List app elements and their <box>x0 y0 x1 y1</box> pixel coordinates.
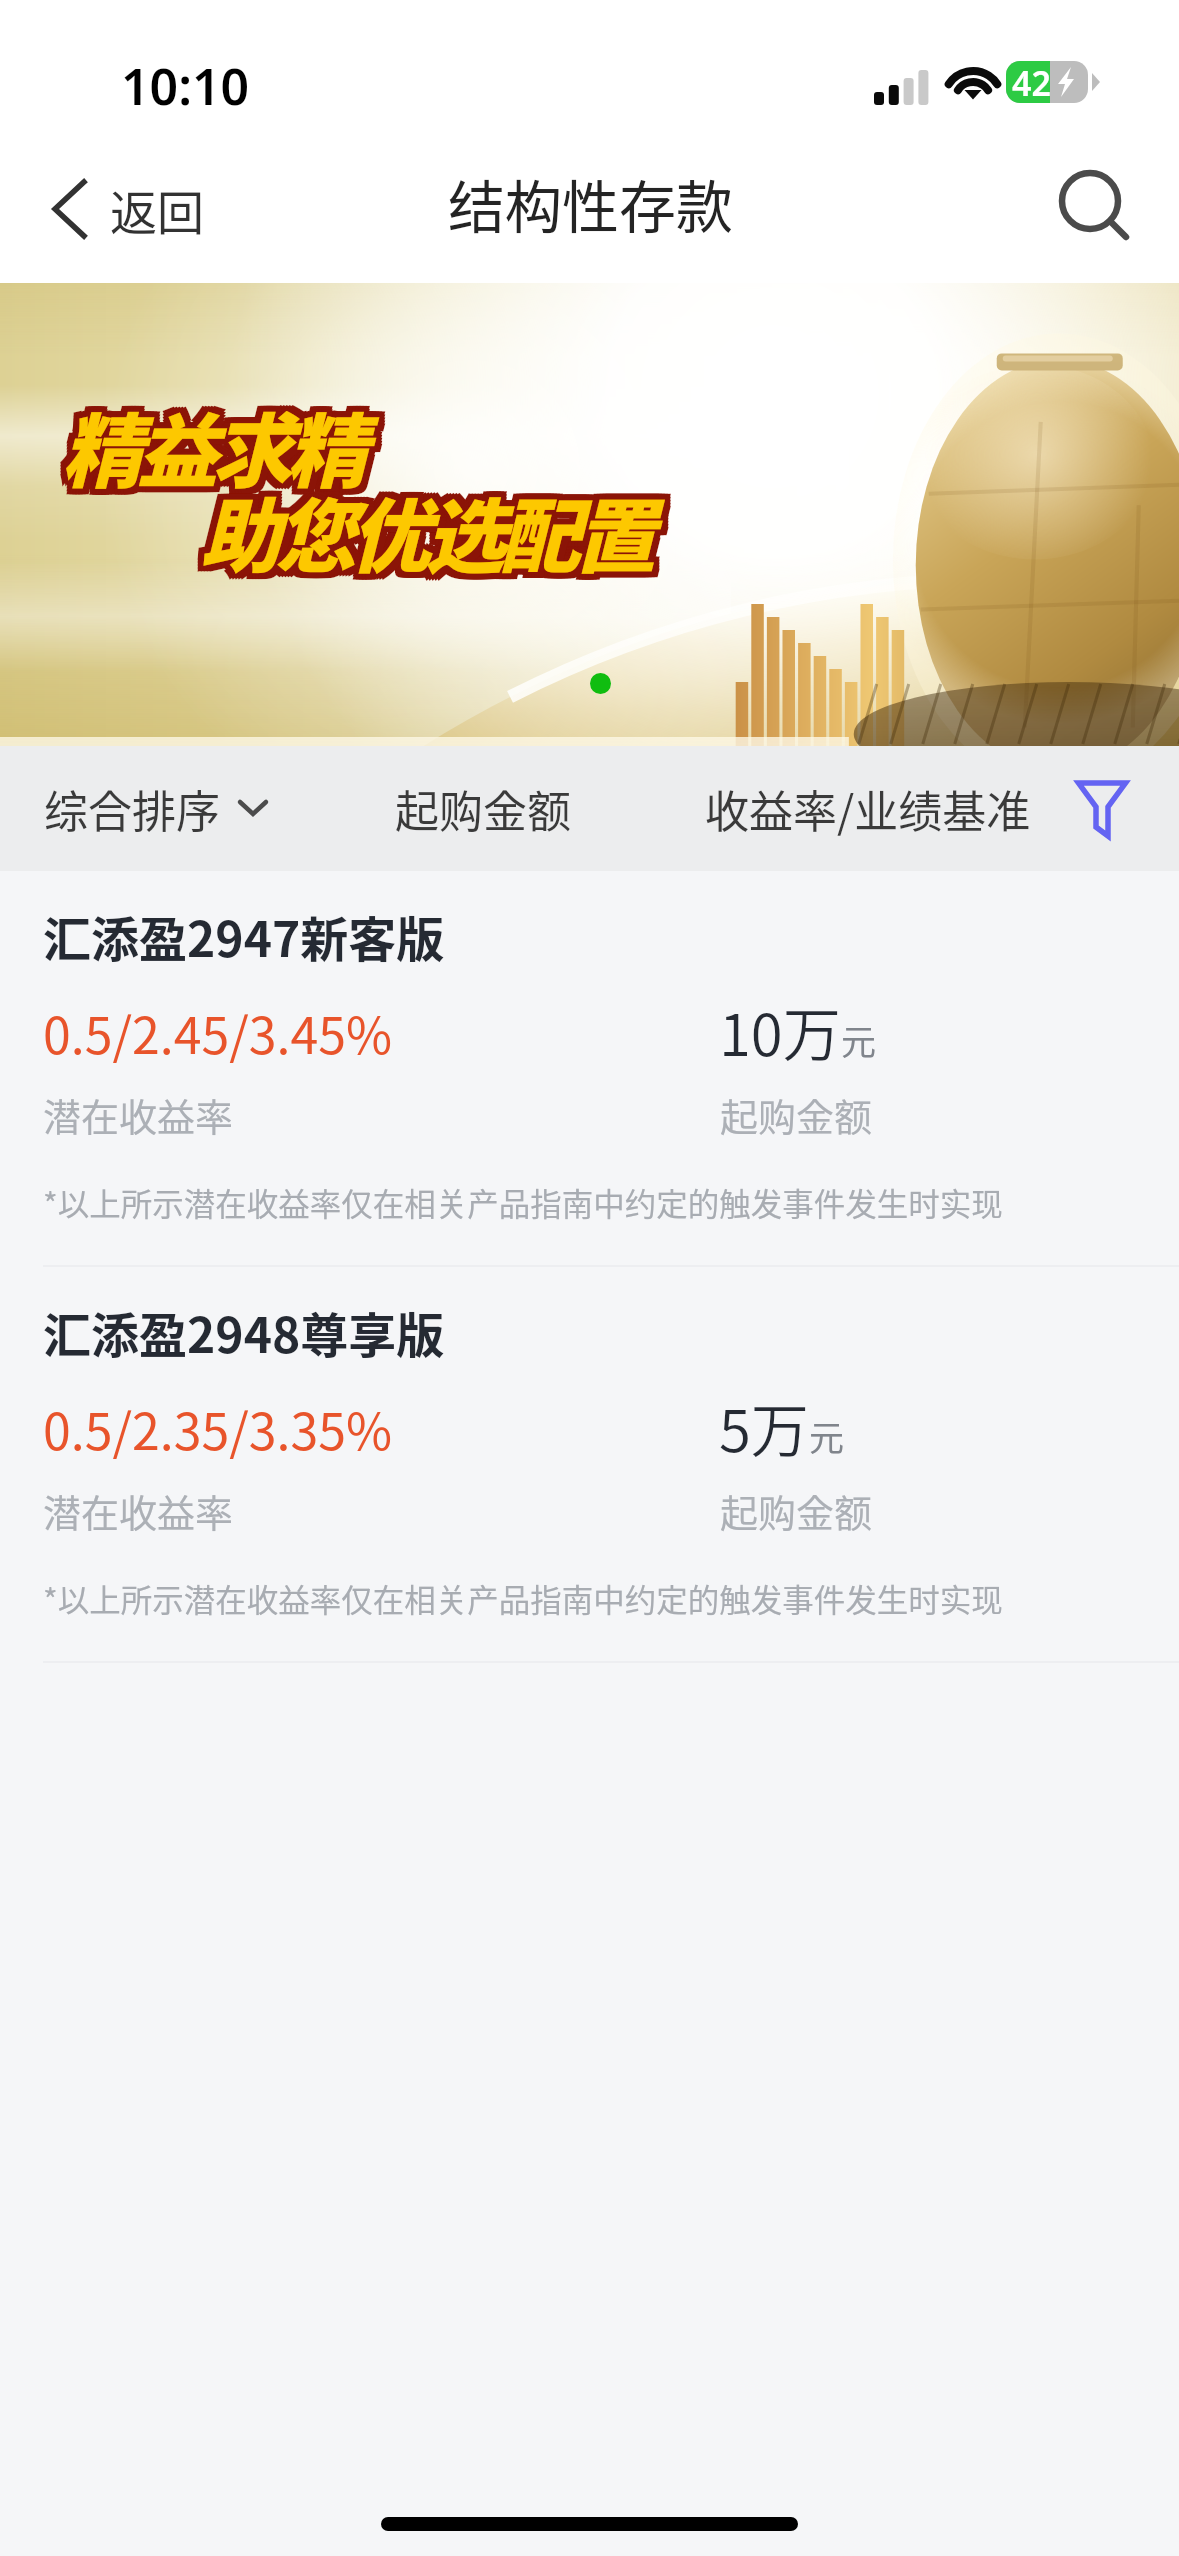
staticText: 助您优选配置 <box>206 478 657 595</box>
button[interactable]: 汇添盈2947新客版 <box>0 871 1179 1267</box>
staticText: 助您优选配置 <box>197 475 648 592</box>
staticText: 助您优选配置 <box>200 472 651 589</box>
staticText: 助您优选配置 <box>203 472 654 589</box>
staticText: 潜在收益率 <box>43 1087 234 1142</box>
staticText: 0.5/2.35/3.35% <box>43 1392 392 1464</box>
button[interactable]: 返回 <box>0 159 232 259</box>
staticText: 助您优选配置 <box>200 466 651 583</box>
staticText: 助您优选配置 <box>200 478 651 595</box>
staticText: 汇添盈2948尊享版 <box>43 1297 445 1367</box>
staticText: 精益求精 <box>59 393 360 510</box>
staticText: 助您优选配置 <box>197 472 648 589</box>
staticText: 精益求精 <box>62 387 363 504</box>
staticText: 助您优选配置 <box>206 475 657 592</box>
staticText: 助您优选配置 <box>194 469 645 586</box>
staticText: 起购金额 <box>720 1087 873 1142</box>
staticText: 精益求精 <box>62 390 363 507</box>
staticText: 精益求精 <box>56 381 357 498</box>
staticText: 汇添盈2947新客版 <box>43 901 445 971</box>
staticText: 42 <box>1012 61 1051 102</box>
staticText: 精益求精 <box>59 381 360 498</box>
staticText: 收益率/业绩基准 <box>705 777 1031 841</box>
staticText: 助您优选配置 <box>197 466 648 583</box>
staticText: 潜在收益率 <box>43 1483 234 1538</box>
staticText: 精益求精 <box>56 387 357 504</box>
staticText: 精益求精 <box>68 390 369 507</box>
staticText: 精益求精 <box>62 393 363 510</box>
staticText: 助您优选配置 <box>194 475 645 592</box>
staticText: 精益求精 <box>59 390 360 507</box>
staticText: 精益求精 <box>56 390 357 507</box>
staticText: 5万 <box>719 1385 809 1469</box>
staticText: *以上所示潜在收益率仅在相关产品指南中约定的触发事件发生时实现 <box>43 1179 1003 1225</box>
staticText: 精益求精 <box>68 393 369 510</box>
staticText: 精益求精 <box>59 387 360 504</box>
staticText: 助您优选配置 <box>197 478 648 595</box>
staticText: 助您优选配置 <box>194 466 645 583</box>
button[interactable]: 综合排序 <box>22 763 290 855</box>
staticText: 助您优选配置 <box>203 475 654 592</box>
staticText: 助您优选配置 <box>194 472 645 589</box>
staticText: 助您优选配置 <box>206 466 657 583</box>
staticText: 精益求精 <box>68 387 369 504</box>
staticText: 精益求精 <box>62 381 363 498</box>
staticText: 助您优选配置 <box>203 466 654 583</box>
staticText: 精益求精 <box>56 393 357 510</box>
staticText: 助您优选配置 <box>200 475 651 592</box>
staticText: *以上所示潜在收益率仅在相关产品指南中约定的触发事件发生时实现 <box>43 1575 1003 1621</box>
staticText: 助您优选配置 <box>203 469 654 586</box>
staticText: 助您优选配置 <box>206 472 657 589</box>
staticText: 精益求精 <box>65 384 366 501</box>
staticText: 精益求精 <box>59 384 360 501</box>
button[interactable]: Filter <box>1062 769 1142 849</box>
staticText: 精益求精 <box>65 387 366 504</box>
staticText: 精益求精 <box>65 381 366 498</box>
staticText: 10万 <box>719 989 841 1073</box>
staticText: 助您优选配置 <box>206 469 657 586</box>
staticText: 元 <box>841 1014 877 1065</box>
staticText: 助您优选配置 <box>203 478 654 595</box>
button[interactable]: 汇添盈2948尊享版 <box>0 1267 1179 1663</box>
staticText: 起购金额 <box>720 1483 873 1538</box>
staticText: 精益求精 <box>65 390 366 507</box>
staticText: 结构性存款 <box>448 162 733 245</box>
staticText: 综合排序 <box>44 777 220 841</box>
staticText: 元 <box>809 1410 845 1461</box>
staticText: 精益求精 <box>65 393 366 510</box>
button[interactable]: 起购金额 <box>373 763 593 855</box>
staticText: 精益求精 <box>68 381 369 498</box>
staticText: 精益求精 <box>56 384 357 501</box>
staticText: 精益求精 <box>68 384 369 501</box>
staticText: 10:10 <box>121 52 250 120</box>
staticText: 精益求精 <box>62 384 363 501</box>
staticText: 助您优选配置 <box>194 478 645 595</box>
staticText: 助您优选配置 <box>200 469 651 586</box>
staticText: 0.5/2.45/3.45% <box>43 996 392 1068</box>
button[interactable]: Search <box>1041 154 1151 264</box>
button[interactable]: 收益率/业绩基准 <box>683 763 1053 855</box>
staticText: 助您优选配置 <box>197 469 648 586</box>
staticText: 起购金额 <box>395 777 571 841</box>
staticText: 返回 <box>110 175 204 243</box>
